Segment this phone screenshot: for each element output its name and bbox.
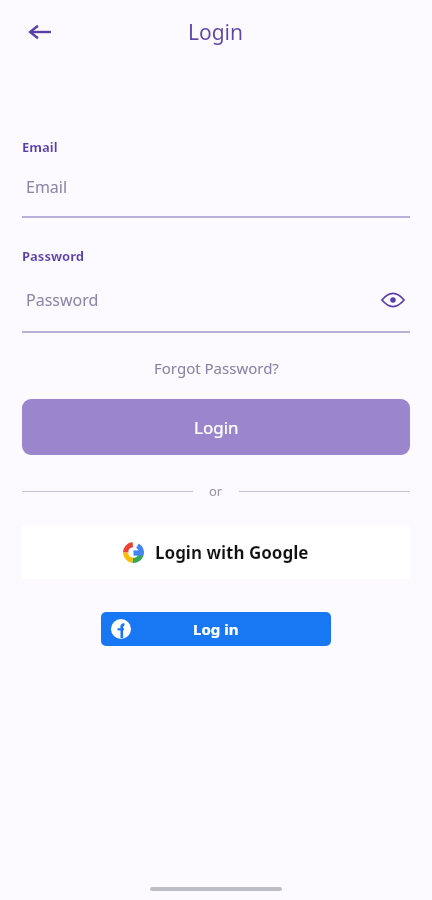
staticText: Login	[188, 18, 244, 47]
staticText: or	[209, 482, 223, 500]
staticText: Forgot Password?	[154, 358, 279, 378]
staticText: Log in	[193, 619, 239, 639]
button[interactable]: Show password	[376, 283, 410, 317]
button[interactable]: Login with Google	[22, 526, 410, 579]
button[interactable]: Login	[22, 399, 410, 455]
button[interactable]: Password	[26, 289, 376, 311]
staticText: Login with Google	[155, 541, 309, 564]
button[interactable]: Back	[16, 8, 64, 56]
button[interactable]: Email	[22, 176, 410, 218]
button[interactable]: Log in	[101, 612, 331, 646]
staticText: Password	[22, 247, 84, 265]
staticText: Email	[22, 138, 58, 156]
button[interactable]: Forgot Password?	[146, 354, 287, 382]
staticText: Login	[194, 416, 239, 439]
staticText: Email	[26, 176, 68, 198]
